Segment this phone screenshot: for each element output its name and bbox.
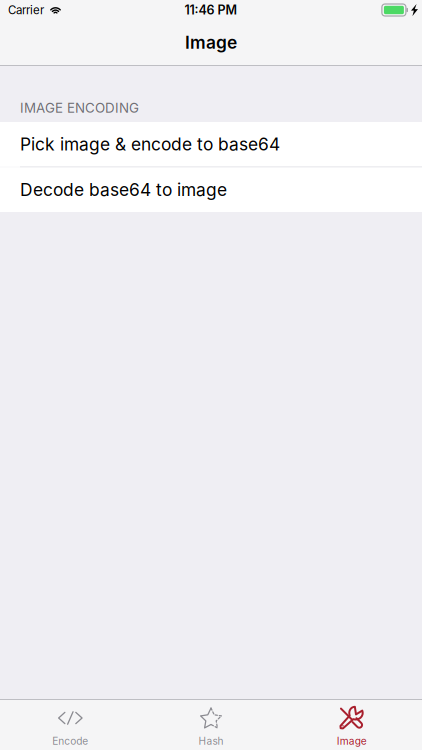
staticText: Pick image & encode to base64 <box>20 134 280 155</box>
staticText: Decode base64 to image <box>20 179 227 200</box>
staticText: Carrier <box>8 3 44 17</box>
staticText: IMAGE ENCODING <box>20 100 139 116</box>
button[interactable]: Decode base64 to image <box>0 167 422 212</box>
staticText: 11:46 PM <box>184 2 237 18</box>
button[interactable]: Image <box>281 700 422 750</box>
button[interactable]: Hash <box>141 700 281 750</box>
staticText: Image <box>337 735 367 747</box>
staticText: Hash <box>198 735 223 747</box>
button[interactable]: Pick image & encode to base64 <box>0 122 422 166</box>
staticText: Encode <box>52 735 88 747</box>
button[interactable]: Encode <box>0 700 141 750</box>
staticText: Image <box>185 32 237 53</box>
